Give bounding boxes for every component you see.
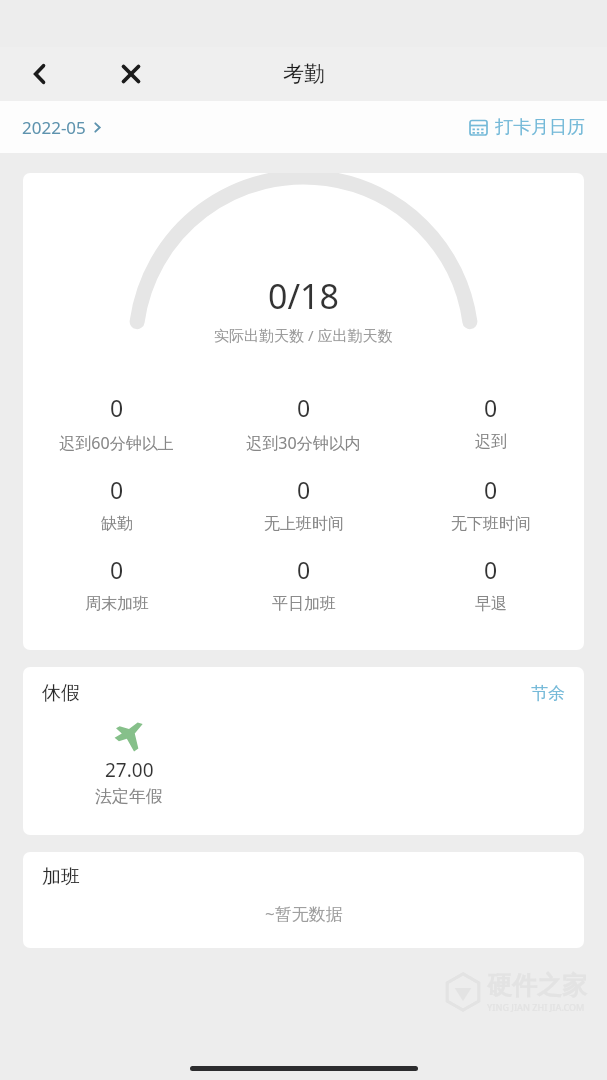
staticText: 迟到60分钟以上 — [59, 432, 174, 454]
staticText: 27.00 — [105, 757, 154, 783]
staticText: 实际出勤天数 / 应出勤天数 — [214, 325, 393, 345]
button[interactable]: 0 — [23, 386, 210, 460]
staticText: 休假 — [42, 681, 80, 705]
button[interactable]: 打卡月日历 — [469, 116, 585, 139]
staticText: 2022-05 — [22, 116, 86, 139]
staticText: 0 — [297, 392, 311, 423]
staticText: 0 — [297, 554, 311, 585]
button[interactable]: 加班 — [23, 852, 584, 948]
staticText: 无上班时间 — [264, 514, 344, 534]
staticText: 周末加班 — [85, 594, 149, 614]
staticText: 打卡月日历 — [495, 116, 585, 139]
staticText: 0 — [297, 474, 311, 505]
staticText: 加班 — [42, 865, 80, 889]
button[interactable]: 0 — [210, 468, 397, 540]
staticText: 0 — [110, 392, 124, 423]
staticText: 考勤 — [283, 61, 325, 87]
button[interactable]: Back — [18, 52, 62, 96]
button[interactable]: 0 — [397, 548, 584, 620]
button[interactable]: 2022-05 — [22, 116, 103, 139]
button[interactable]: 0 — [23, 548, 210, 620]
staticText: 早退 — [475, 594, 507, 614]
staticText: ~暂无数据 — [265, 902, 343, 925]
staticText: 0 — [484, 392, 498, 423]
button[interactable]: 0 — [210, 386, 397, 460]
button[interactable]: 0 — [210, 548, 397, 620]
staticText: 迟到 — [475, 432, 507, 452]
staticText: 无下班时间 — [451, 514, 531, 534]
button[interactable]: 0 — [397, 386, 584, 458]
button[interactable]: 0/18 — [23, 173, 584, 650]
staticText: 0/18 — [268, 273, 339, 319]
staticText: 平日加班 — [272, 594, 336, 614]
button[interactable]: 节余 — [512, 675, 584, 712]
button[interactable]: 27.00 — [95, 719, 163, 807]
button[interactable]: 0 — [397, 468, 584, 540]
staticText: 0 — [484, 554, 498, 585]
staticText: 法定年假 — [95, 786, 163, 807]
staticText: 节余 — [531, 683, 565, 704]
staticText: 0 — [110, 554, 124, 585]
staticText: 缺勤 — [101, 514, 133, 534]
button[interactable]: 0 — [23, 468, 210, 540]
staticText: YING JIAN ZHI JIA.COM — [487, 1001, 585, 1013]
staticText: 迟到30分钟以内 — [246, 432, 361, 454]
staticText: 0 — [110, 474, 124, 505]
staticText: 硬件之家 — [487, 970, 587, 1001]
button[interactable]: Close — [109, 52, 153, 96]
staticText: 0 — [484, 474, 498, 505]
